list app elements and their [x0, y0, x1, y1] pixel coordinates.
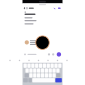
- button[interactable]: Send: [54, 52, 62, 57]
- button[interactable]: Camera: [48, 53, 50, 55]
- button[interactable]: [22, 7, 34, 9]
- button[interactable]: Video call: [56, 7, 62, 9]
- button[interactable]: Call: [54, 7, 56, 9]
- button[interactable]: Audio: [50, 53, 54, 55]
- button[interactable]: Add attachment: [22, 53, 26, 55]
